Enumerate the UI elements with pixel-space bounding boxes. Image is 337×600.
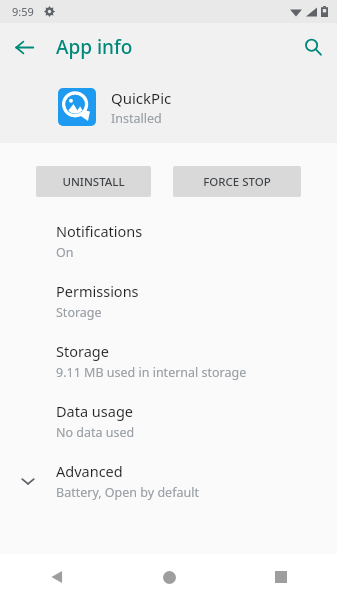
button[interactable]: Search	[294, 28, 332, 66]
button[interactable]: Permissions	[0, 271, 337, 331]
button[interactable]: Advanced	[0, 451, 337, 511]
staticText: UNINSTALL	[62, 174, 125, 190]
button[interactable]: Home	[113, 554, 225, 600]
staticText: Notifications	[56, 221, 143, 241]
staticText: Storage	[56, 341, 109, 361]
button[interactable]: Back	[0, 554, 113, 600]
staticText: App info	[56, 34, 133, 60]
button[interactable]: Notifications	[0, 211, 337, 271]
button[interactable]: Data usage	[0, 391, 337, 451]
staticText: FORCE STOP	[203, 174, 271, 190]
button[interactable]: Storage	[0, 331, 337, 391]
staticText: 9.11 MB used in internal storage	[56, 364, 247, 381]
button[interactable]: UNINSTALL	[36, 166, 151, 197]
button[interactable]: FORCE STOP	[173, 166, 301, 197]
staticText: Battery, Open by default	[56, 484, 199, 501]
staticText: Storage	[56, 304, 102, 321]
button[interactable]: Back	[5, 28, 43, 66]
staticText: 9:59	[12, 4, 34, 19]
staticText: No data used	[56, 424, 135, 441]
staticText: Permissions	[56, 281, 139, 301]
staticText: Advanced	[56, 461, 123, 481]
button[interactable]: Recent apps	[225, 554, 337, 600]
button[interactable]: QuickPic	[0, 71, 337, 143]
staticText: Data usage	[56, 401, 133, 421]
staticText: QuickPic	[111, 88, 172, 108]
staticText: Installed	[111, 110, 162, 127]
staticText: On	[56, 244, 74, 261]
